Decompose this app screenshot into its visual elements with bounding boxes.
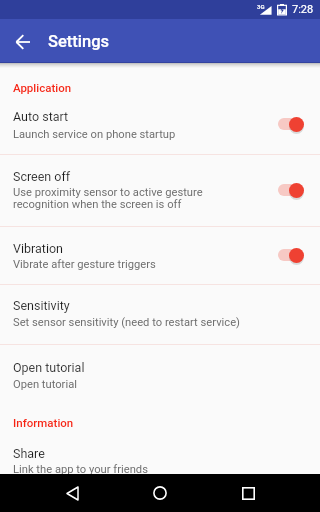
staticText: Screen off [13, 169, 71, 184]
staticText: Link the app to your friends [13, 463, 148, 474]
staticText: Vibrate after gesture triggers [13, 258, 156, 271]
staticText: Settings [48, 32, 110, 51]
button[interactable]: Share [0, 432, 320, 474]
staticText: Open tutorial [13, 378, 77, 391]
staticText: Share [13, 446, 45, 461]
button[interactable]: Auto start [277, 111, 315, 137]
button[interactable]: Home [138, 474, 182, 512]
staticText: Sensitivity [13, 298, 70, 313]
staticText: Use proximity sensor to active gesture r… [13, 186, 203, 210]
button[interactable]: Screen off [0, 154, 320, 226]
button[interactable]: Auto start [0, 91, 320, 154]
button[interactable]: Vibration [277, 242, 315, 268]
button[interactable]: Navigate up [8, 27, 37, 56]
staticText: Application [13, 81, 72, 94]
button[interactable]: Vibration [0, 226, 320, 284]
staticText: 7:28 [292, 3, 314, 16]
button[interactable]: Screen off [277, 177, 315, 203]
staticText: Launch service on phone startup [13, 128, 176, 141]
button[interactable]: Sensitivity [0, 284, 320, 344]
button[interactable]: Recent apps [226, 474, 270, 512]
staticText: Auto start [13, 109, 69, 124]
staticText: Information [13, 416, 74, 429]
staticText: Open tutorial [13, 360, 85, 375]
staticText: 3G [257, 3, 265, 10]
button[interactable]: Open tutorial [0, 344, 320, 400]
button[interactable]: Back [50, 474, 94, 512]
staticText: Vibration [13, 241, 63, 256]
staticText: Set sensor sensitivity (need to restart … [13, 316, 240, 329]
